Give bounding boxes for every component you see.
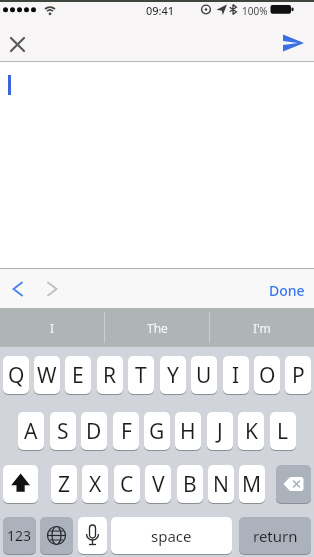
- staticText: Y: [167, 361, 179, 390]
- staticText: O: [259, 361, 276, 390]
- staticText: H: [180, 417, 196, 446]
- staticText: E: [72, 361, 84, 390]
- staticText: C: [120, 470, 134, 499]
- staticText: I: [50, 320, 55, 336]
- staticText: space: [151, 526, 192, 546]
- staticText: G: [149, 417, 165, 446]
- staticText: return: [253, 526, 298, 546]
- staticText: Q: [8, 361, 25, 390]
- staticText: D: [86, 417, 102, 446]
- staticText: M: [242, 470, 262, 499]
- staticText: 123: [7, 526, 32, 545]
- staticText: W: [37, 361, 57, 390]
- staticText: K: [245, 417, 258, 446]
- staticText: U: [196, 361, 212, 390]
- staticText: Done: [269, 281, 305, 300]
- staticText: 100%: [242, 4, 268, 18]
- staticText: B: [183, 470, 197, 499]
- staticText: Z: [58, 470, 71, 499]
- staticText: T: [135, 361, 147, 390]
- staticText: I: [232, 361, 240, 390]
- staticText: S: [57, 417, 69, 446]
- staticText: L: [277, 417, 289, 446]
- staticText: J: [217, 417, 223, 446]
- staticText: P: [292, 361, 305, 390]
- staticText: R: [103, 361, 117, 390]
- staticText: N: [213, 470, 229, 499]
- staticText: I'm: [253, 320, 271, 336]
- staticText: X: [89, 470, 102, 499]
- staticText: F: [121, 417, 132, 446]
- staticText: The: [147, 320, 168, 336]
- staticText: 09:41: [146, 3, 175, 18]
- staticText: A: [24, 417, 38, 446]
- staticText: V: [152, 470, 165, 499]
